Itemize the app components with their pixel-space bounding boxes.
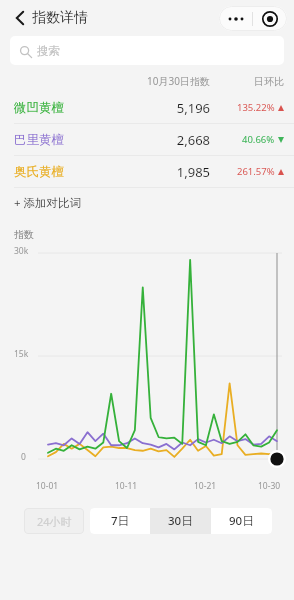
staticText: 135.22% (237, 101, 275, 114)
staticText: 搜索 (37, 44, 60, 58)
button[interactable]: + 添加对比词 (0, 188, 294, 218)
staticText: 30日 (168, 513, 193, 529)
staticText: 40.66% (242, 133, 275, 146)
staticText: 2,668 (138, 131, 210, 149)
staticText: 微凹黄檀 (14, 100, 64, 116)
button[interactable]: 巴里黄檀 (0, 124, 294, 155)
staticText: 10-11 (115, 480, 138, 492)
staticText: 10-01 (36, 480, 59, 492)
staticText: 指数 (14, 228, 34, 241)
staticText: 奥氏黄檀 (14, 164, 64, 180)
button[interactable]: 24小时 (24, 508, 84, 534)
button[interactable]: Back (6, 4, 34, 32)
staticText: 90日 (229, 513, 254, 529)
staticText: 24小时 (37, 514, 72, 529)
button[interactable]: 奥氏黄檀 (0, 156, 294, 187)
button[interactable]: 30日 (150, 508, 211, 534)
staticText: 30k (14, 245, 29, 257)
staticText: 10月30日指数 (138, 74, 210, 88)
button[interactable]: Close (253, 6, 287, 31)
staticText: 巴里黄檀 (14, 132, 64, 148)
staticText: 15k (14, 348, 29, 360)
staticText: + 添加对比词 (14, 195, 82, 211)
button[interactable]: 搜索 (10, 36, 284, 65)
staticText: 指数详情 (32, 9, 88, 27)
staticText: 10-21 (194, 480, 217, 492)
staticText: 日环比 (234, 75, 284, 88)
button[interactable]: 7日 (90, 508, 150, 534)
staticText: 10-30 (258, 480, 281, 492)
staticText: 5,196 (138, 99, 210, 117)
staticText: 0 (21, 451, 26, 463)
staticText: 7日 (111, 513, 130, 529)
staticText: 261.57% (237, 165, 275, 178)
button[interactable]: More (219, 6, 252, 31)
staticText: 1,985 (138, 163, 210, 181)
button[interactable]: 微凹黄檀 (0, 92, 294, 123)
button[interactable]: 90日 (211, 508, 272, 534)
